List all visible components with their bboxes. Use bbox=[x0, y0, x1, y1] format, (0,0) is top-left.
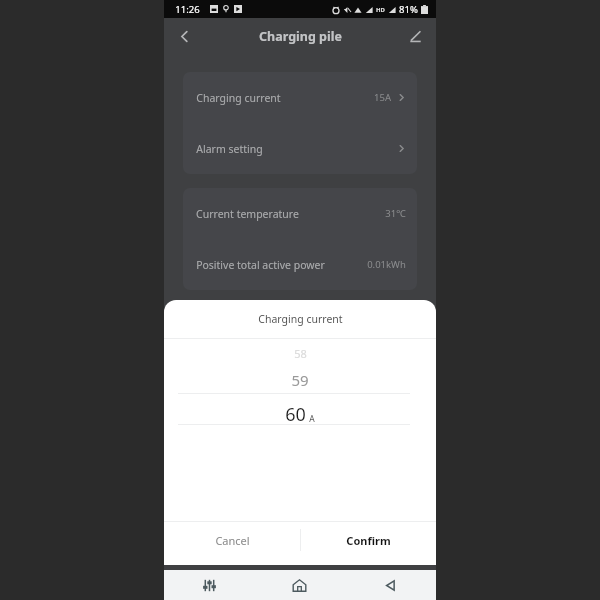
staticText: 58 bbox=[294, 346, 307, 361]
staticText: 81% bbox=[399, 3, 418, 16]
staticText: Alarm setting bbox=[196, 142, 263, 156]
staticText: 15A bbox=[374, 91, 391, 104]
staticText: Charging pile bbox=[259, 28, 342, 45]
staticText: HD bbox=[376, 6, 385, 14]
staticText: A bbox=[309, 413, 315, 425]
button[interactable]: Home bbox=[254, 570, 345, 600]
staticText: Current temperature bbox=[196, 207, 299, 221]
staticText: 31℃ bbox=[385, 207, 406, 220]
staticText: Charging current bbox=[258, 312, 343, 326]
button[interactable]: Alarm setting bbox=[183, 123, 417, 174]
button[interactable]: Confirm bbox=[300, 522, 436, 558]
button[interactable]: Back bbox=[345, 570, 436, 600]
staticText: 0.01kWh bbox=[367, 258, 406, 271]
button[interactable]: Recents bbox=[164, 570, 254, 600]
button[interactable]: Edit bbox=[402, 23, 428, 49]
staticText: Confirm bbox=[346, 533, 391, 548]
button[interactable]: Positive total active power bbox=[183, 239, 417, 290]
staticText: 60 bbox=[285, 402, 306, 427]
button[interactable]: Cancel bbox=[164, 522, 300, 558]
staticText: Cancel bbox=[215, 533, 250, 548]
staticText: Charging current bbox=[196, 91, 281, 105]
button[interactable]: Back bbox=[170, 22, 198, 50]
staticText: 11:26 bbox=[175, 3, 200, 16]
button[interactable]: Current temperature bbox=[183, 188, 417, 239]
staticText: Positive total active power bbox=[196, 258, 325, 272]
button[interactable]: Charging current bbox=[183, 72, 417, 123]
staticText: 59 bbox=[291, 370, 309, 390]
